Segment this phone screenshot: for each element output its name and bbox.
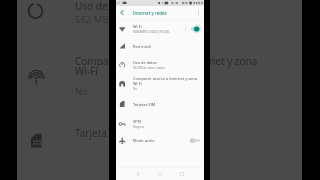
staticText: rnet y zona <box>205 54 258 68</box>
staticText: Ninguna <box>133 125 145 129</box>
staticText: Wi-Fi <box>75 64 98 78</box>
button[interactable]: Wi-Fi <box>116 20 204 38</box>
staticText: Tarjeta <box>75 126 107 140</box>
staticText: 582 MB <box>75 13 109 26</box>
button[interactable]: Compartir acceso a Internet y zona <box>116 73 204 94</box>
button[interactable]: Uso de datos <box>116 56 204 74</box>
button[interactable]: Back <box>116 6 129 19</box>
button[interactable]: More options <box>194 6 204 19</box>
button[interactable]: Modo avión <box>116 132 204 149</box>
staticText: 582 MB de datos usados <box>133 66 166 70</box>
staticText: Wi-Fi <box>133 81 142 86</box>
staticText: Wi-Fi <box>133 24 142 29</box>
button[interactable]: VPN <box>116 115 204 133</box>
staticText: Tarjetas SIM <box>133 102 156 107</box>
staticText: Compa <box>75 54 109 68</box>
staticText: No <box>75 85 88 98</box>
staticText: Compartir acceso a Internet y zona <box>133 76 197 81</box>
button[interactable]: Tarjetas SIM <box>116 96 204 112</box>
staticText: Red móvil <box>133 44 151 49</box>
button[interactable]: Red móvil <box>116 38 204 54</box>
staticText: Internet y redes <box>133 10 167 16</box>
staticText: Uso de <box>75 0 108 13</box>
staticText: No <box>133 87 137 91</box>
staticText: VPN <box>133 119 141 124</box>
staticText: Modo avión <box>133 138 155 143</box>
staticText: MIRAMAR/CIUDAD_OFICIAL <box>133 30 170 34</box>
staticText: Uso de datos <box>133 60 157 65</box>
